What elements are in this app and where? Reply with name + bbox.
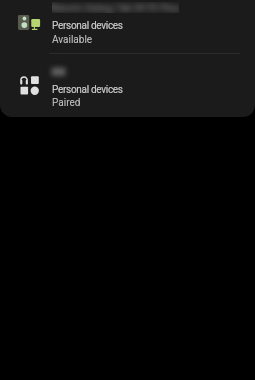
other: Speaker and TV [18,15,41,30]
staticText: Baron's Galaxy Tab S9 FE Plus [52,2,179,13]
staticText: Personal devices [52,20,123,32]
button[interactable]: Speaker and TV [0,0,255,53]
staticText: Paired [52,97,81,109]
staticText: Available [52,34,93,46]
button[interactable]: Paired devices [0,54,255,117]
other: Paired devices [20,76,39,95]
staticText: Personal devices [52,84,123,96]
